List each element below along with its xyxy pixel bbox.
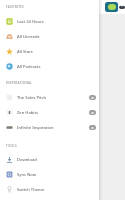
button[interactable]: All Stars bbox=[0, 44, 99, 59]
staticText: Infinite Inspiration bbox=[17, 125, 54, 131]
button[interactable]: All Podcasts bbox=[0, 59, 99, 74]
staticText: Download bbox=[17, 157, 37, 163]
button[interactable]: Toggle The Sales Pitch bbox=[89, 95, 96, 100]
staticText: TOOLS bbox=[6, 144, 17, 148]
staticText: All Stars bbox=[17, 49, 33, 55]
button[interactable]: Download bbox=[0, 152, 99, 167]
staticText: INSPIRATIONAL bbox=[6, 81, 33, 85]
staticText: FAVORITES bbox=[6, 5, 24, 9]
staticText: Zen Habits bbox=[17, 110, 38, 116]
button[interactable]: Last 24 Hours bbox=[0, 14, 99, 29]
button[interactable]: All Unreads bbox=[0, 29, 99, 44]
staticText: All Podcasts bbox=[17, 64, 41, 70]
button[interactable]: Sync Now bbox=[0, 167, 99, 182]
staticText: The Sales Pitch bbox=[17, 95, 47, 101]
staticText: Last 24 Hours bbox=[17, 19, 44, 25]
button[interactable]: Infinite Inspiration bbox=[0, 120, 99, 135]
button[interactable]: Zen Habits bbox=[0, 105, 99, 120]
staticText: Sync Now bbox=[17, 172, 36, 178]
button[interactable]: Toggle Infinite Inspiration bbox=[89, 125, 96, 130]
staticText: Switch Theme bbox=[17, 187, 45, 193]
button[interactable]: Toggle Zen Habits bbox=[89, 110, 96, 115]
staticText: All Unreads bbox=[17, 34, 40, 40]
button[interactable]: The Sales Pitch bbox=[0, 90, 99, 105]
button[interactable]: App logo bbox=[105, 2, 118, 12]
button[interactable]: Switch Theme bbox=[0, 182, 99, 197]
